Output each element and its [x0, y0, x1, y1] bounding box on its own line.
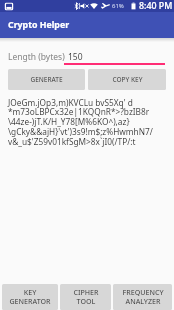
staticText: 8:40 PM	[139, 0, 173, 12]
staticText: JOeGm.jOp3,m)KVCLu bvS5Xq' d	[8, 97, 133, 108]
staticText: Crypto Helper	[8, 19, 70, 31]
staticText: *m73oLBPCx32e|1KQQnR*>?bzIB8r	[8, 106, 150, 117]
button[interactable]: FREQUENCY ANALYZER	[113, 284, 172, 310]
button[interactable]: KEY GENERATOR	[2, 284, 58, 310]
button[interactable]: COPY KEY	[88, 69, 166, 90]
staticText: GENERATE	[30, 75, 63, 84]
other: Screenshot	[4, 2, 14, 11]
staticText: v&_u$'Z59v01kfSgM>8x`jI0(/TP/:t	[8, 136, 136, 147]
staticText: FREQUENCY ANALYZER	[122, 287, 164, 307]
staticText: KEY GENERATOR	[9, 287, 51, 307]
staticText: 61%	[112, 2, 124, 10]
button[interactable]: GENERATE	[8, 69, 85, 90]
button[interactable]: CIPHER TOOL	[60, 284, 111, 310]
staticText: CIPHER TOOL	[73, 287, 99, 307]
staticText: \gCky&&ajH}'vt')3s9!m$;z%HwmhN7/	[8, 126, 153, 137]
button[interactable]: 150	[68, 51, 83, 63]
staticText: COPY KEY	[112, 75, 143, 84]
staticText: \44ze-)jT.K/H_Y78[M%6KO^),az}	[8, 116, 130, 127]
staticText: Length (bytes)	[8, 51, 65, 63]
